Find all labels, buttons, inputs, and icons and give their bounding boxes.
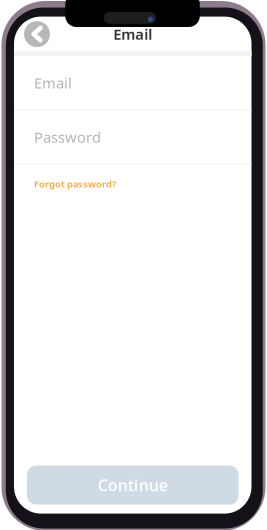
staticText: Email — [34, 73, 72, 93]
button[interactable]: Forgot password? — [33, 172, 117, 196]
button[interactable]: Back — [20, 17, 54, 51]
button[interactable]: Continue — [27, 466, 238, 505]
staticText: Email — [113, 24, 152, 44]
staticText: Continue — [98, 474, 168, 496]
staticText: Password — [34, 127, 101, 147]
staticText: Forgot password? — [34, 178, 116, 190]
